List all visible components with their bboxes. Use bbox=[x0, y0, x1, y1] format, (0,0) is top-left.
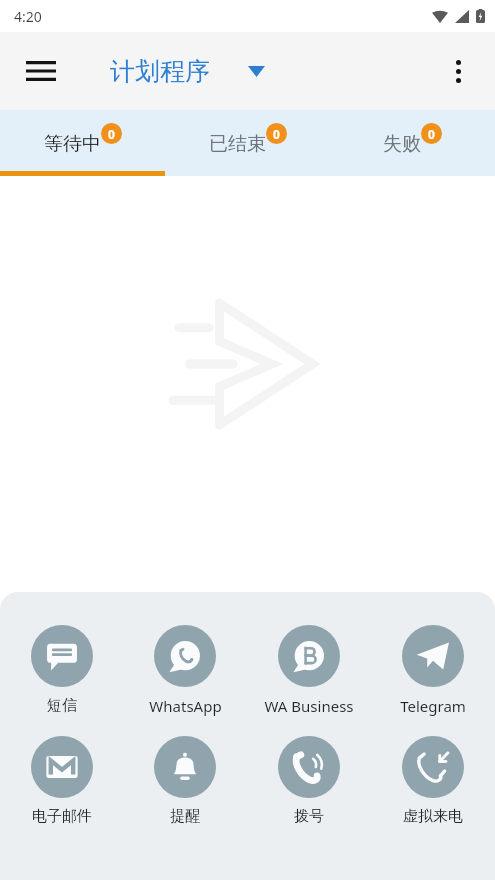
button[interactable]: More options bbox=[431, 44, 485, 98]
button[interactable]: 拨号 bbox=[247, 736, 371, 826]
staticText: 0 bbox=[273, 126, 280, 142]
button[interactable]: 电子邮件 bbox=[0, 736, 123, 826]
button[interactable]: 短信 bbox=[0, 625, 123, 715]
staticText: 0 bbox=[428, 126, 435, 142]
button[interactable]: 已结束 bbox=[165, 110, 330, 176]
staticText: 0 bbox=[108, 126, 115, 142]
button[interactable]: 计划程序 bbox=[110, 56, 265, 87]
button[interactable]: Telegram bbox=[371, 625, 495, 716]
staticText: WhatsApp bbox=[149, 696, 222, 716]
staticText: Telegram bbox=[400, 696, 466, 716]
button[interactable]: 等待中 bbox=[0, 110, 165, 176]
button[interactable]: 虚拟来电 bbox=[371, 736, 495, 826]
staticText: 失败 bbox=[383, 132, 421, 156]
staticText: 提醒 bbox=[170, 807, 200, 826]
staticText: 计划程序 bbox=[110, 56, 210, 87]
button[interactable]: 失败 bbox=[330, 110, 495, 176]
button[interactable]: WA Business bbox=[247, 625, 371, 716]
staticText: 4:20 bbox=[14, 7, 42, 26]
button[interactable]: 提醒 bbox=[123, 736, 247, 826]
staticText: 短信 bbox=[47, 696, 77, 715]
button[interactable]: WhatsApp bbox=[123, 625, 247, 716]
staticText: 虚拟来电 bbox=[403, 807, 463, 826]
staticText: 等待中 bbox=[44, 132, 101, 156]
staticText: 已结束 bbox=[209, 132, 266, 156]
staticText: 电子邮件 bbox=[32, 807, 92, 826]
staticText: 拨号 bbox=[294, 807, 324, 826]
staticText: WA Business bbox=[264, 696, 354, 716]
button[interactable]: Menu bbox=[14, 44, 68, 98]
